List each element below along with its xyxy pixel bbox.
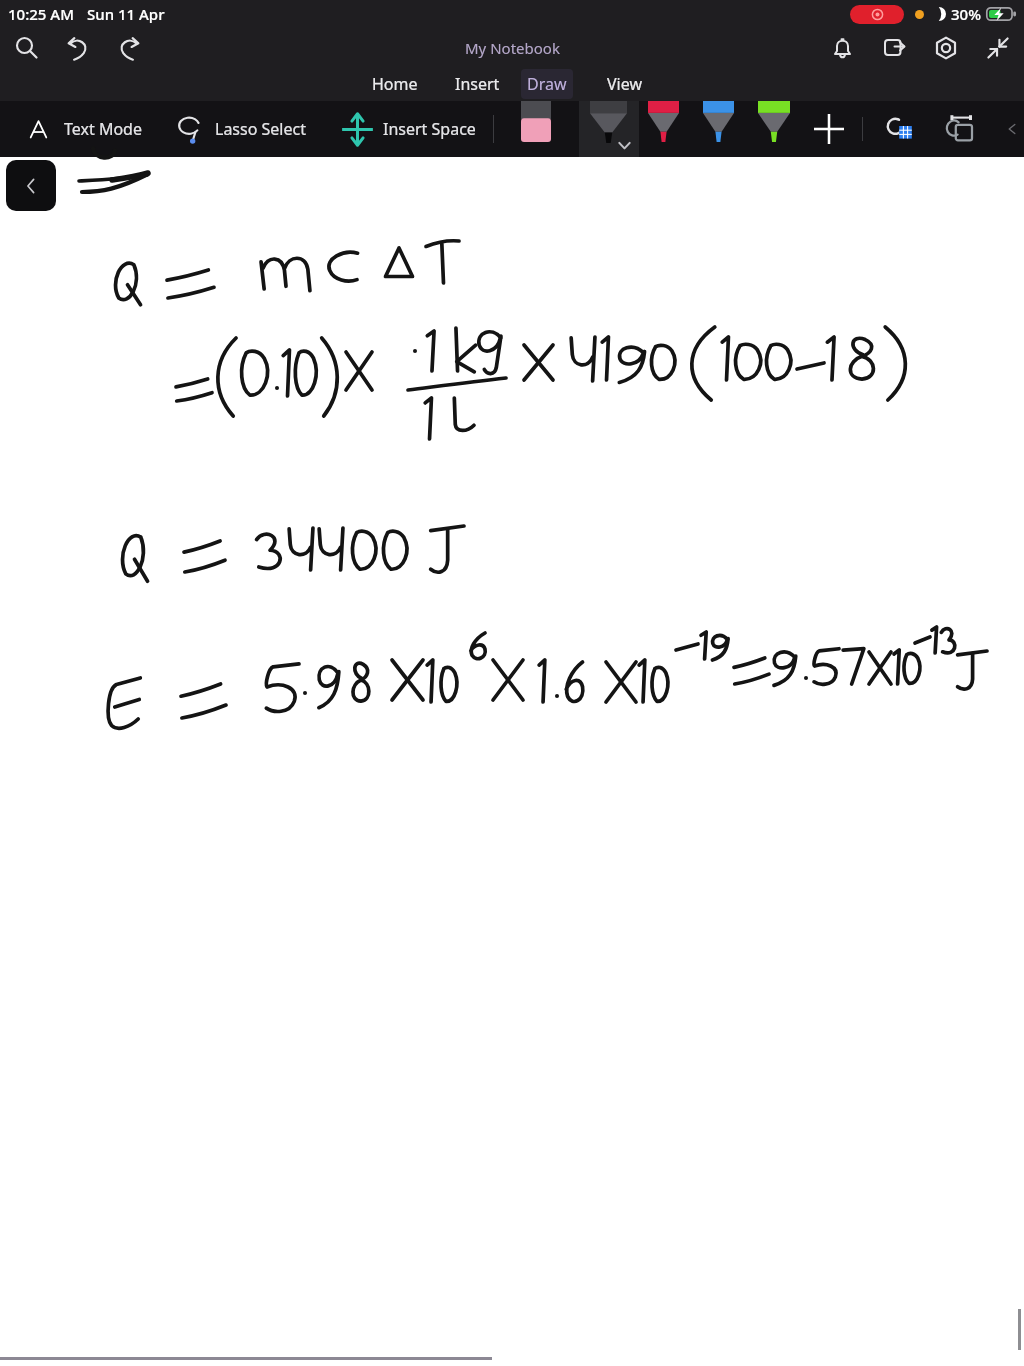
button[interactable]: Notifications	[816, 28, 868, 67]
button[interactable]: Shapes	[938, 101, 982, 157]
button[interactable]: Settings	[920, 28, 972, 67]
staticText: Text Mode	[64, 118, 142, 140]
staticText: Insert Space	[383, 118, 476, 140]
button[interactable]: Select objects	[878, 101, 923, 157]
button[interactable]: Home	[366, 69, 424, 99]
staticText: My Notebook	[465, 38, 560, 58]
button[interactable]: Redo	[103, 28, 154, 67]
staticText: Lasso Select	[215, 118, 306, 140]
button[interactable]: Highlighter	[515, 101, 557, 157]
button[interactable]: Draw	[521, 69, 573, 99]
button[interactable]: Undo	[52, 28, 103, 67]
staticText: View	[607, 73, 643, 95]
staticText: Draw	[527, 73, 567, 95]
button[interactable]: Back	[6, 160, 56, 211]
button[interactable]: More	[1002, 101, 1022, 157]
staticText: Home	[372, 73, 418, 95]
button[interactable]: Share	[868, 28, 920, 67]
staticText: 10:25 AM	[8, 4, 74, 24]
staticText: Insert	[455, 73, 500, 95]
button[interactable]	[332, 101, 486, 157]
staticText: Sun 11 Apr	[87, 4, 165, 24]
button[interactable]: Insert	[449, 69, 506, 99]
staticText: 30%	[951, 4, 981, 24]
button[interactable]: Red pen	[640, 101, 687, 157]
button[interactable]: Add pen	[806, 101, 852, 157]
button[interactable]: Green pen	[750, 101, 798, 157]
button[interactable]	[169, 101, 318, 157]
button[interactable]	[20, 101, 150, 157]
button[interactable]: View	[601, 69, 649, 99]
button[interactable]: Black pen	[579, 101, 639, 157]
button[interactable]: Search	[0, 28, 52, 67]
button[interactable]: Blue pen	[695, 101, 742, 157]
button[interactable]: Collapse	[972, 28, 1024, 67]
